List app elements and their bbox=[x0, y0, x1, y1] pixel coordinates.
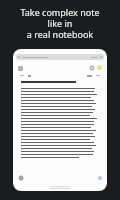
button[interactable]: Sync bbox=[96, 174, 103, 181]
button[interactable]: New note bbox=[17, 174, 24, 181]
button[interactable]: Menu bbox=[17, 65, 23, 71]
button[interactable]: Address bar bbox=[16, 54, 104, 60]
button[interactable]: Highlight colour bbox=[96, 64, 103, 71]
staticText: Take complex note like in a real noteboo… bbox=[4, 6, 116, 40]
button[interactable]: Options bbox=[88, 64, 95, 71]
button[interactable]: Address bar bbox=[13, 49, 107, 191]
